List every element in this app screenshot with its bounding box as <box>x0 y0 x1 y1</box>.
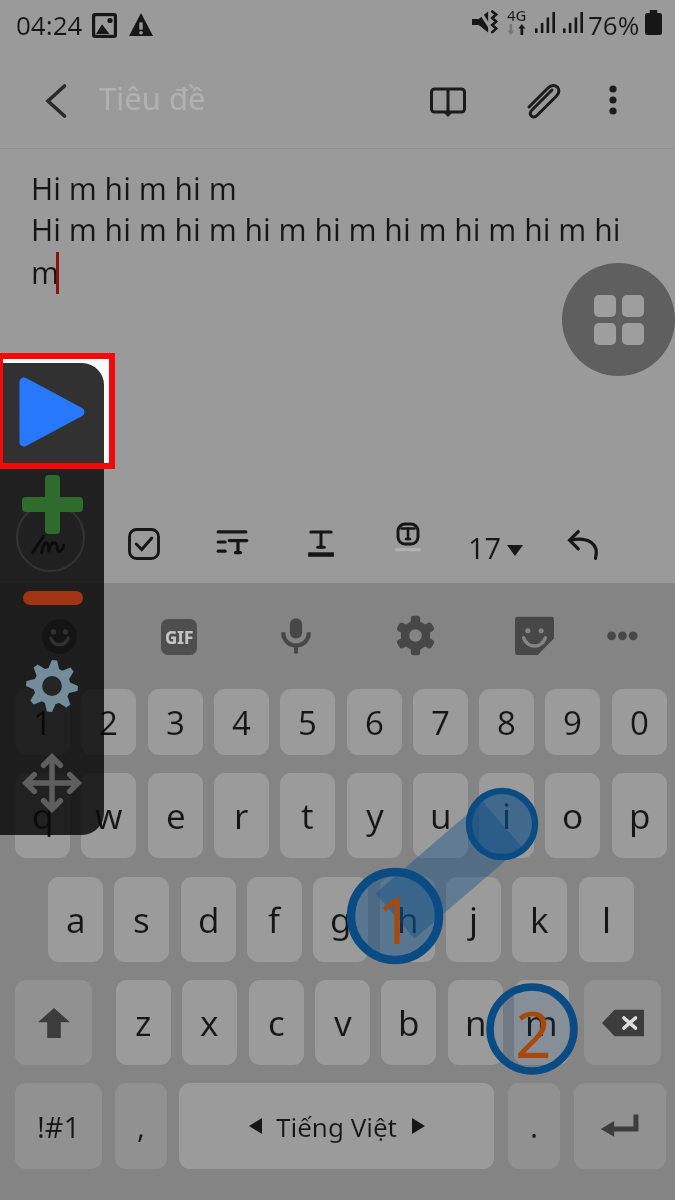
button[interactable]: Emoji <box>42 619 77 654</box>
button[interactable]: Attach <box>517 75 567 125</box>
staticText: Hi m hi m hi m hi m hi m hi m hi m hi m … <box>31 209 621 293</box>
staticText: t <box>301 792 314 840</box>
button[interactable]: 4 <box>214 689 269 755</box>
staticText: q <box>32 792 54 840</box>
button[interactable]: a <box>48 877 103 962</box>
button[interactable]: f <box>247 877 302 962</box>
staticText: v <box>334 999 352 1047</box>
staticText: z <box>135 999 152 1047</box>
staticText: 8 <box>497 700 516 745</box>
staticText: 9 <box>563 700 582 745</box>
button[interactable]: x <box>182 980 237 1065</box>
staticText: 1 <box>377 876 414 958</box>
button[interactable]: 9 <box>545 689 600 755</box>
button[interactable]: u <box>413 773 468 858</box>
staticText: f <box>268 896 281 944</box>
button[interactable]: v <box>315 980 370 1065</box>
button[interactable]: 2 <box>81 689 136 755</box>
button[interactable]: Text box <box>383 515 433 565</box>
button[interactable]: 0 <box>612 689 667 755</box>
button[interactable]: t <box>280 773 335 858</box>
button[interactable]: Paragraph style <box>209 519 255 565</box>
button[interactable]: . <box>508 1083 560 1169</box>
button[interactable]: Stop <box>23 591 83 605</box>
staticText: i <box>502 792 512 840</box>
button[interactable]: Play <box>0 363 104 465</box>
button[interactable]: 6 <box>347 689 402 755</box>
button[interactable]: More options <box>588 75 638 125</box>
staticText: w <box>95 792 123 840</box>
staticText: GIF <box>165 626 194 649</box>
staticText: x <box>200 999 219 1047</box>
button[interactable]: w <box>81 773 136 858</box>
button[interactable]: 3 <box>148 689 203 755</box>
button[interactable]: m <box>514 980 569 1065</box>
staticText: r <box>234 792 249 840</box>
button[interactable]: r <box>214 773 269 858</box>
button[interactable]: Move <box>23 754 81 812</box>
staticText: n <box>465 999 487 1047</box>
button[interactable]: s <box>114 877 169 962</box>
staticText: 76% <box>588 7 640 42</box>
button[interactable]: p <box>612 773 667 858</box>
button[interactable]: 7 <box>413 689 468 755</box>
button[interactable]: Voice input <box>274 613 318 657</box>
button[interactable]: 8 <box>479 689 534 755</box>
staticText: 2 <box>99 700 118 745</box>
staticText: a <box>66 896 86 944</box>
button[interactable]: Stickers <box>515 616 554 655</box>
button[interactable]: c <box>249 980 304 1065</box>
button[interactable]: Enter <box>574 1083 666 1169</box>
button[interactable]: z <box>116 980 171 1065</box>
button[interactable]: !#1 <box>15 1083 102 1169</box>
button[interactable]: o <box>545 773 600 858</box>
staticText: o <box>562 792 584 840</box>
button[interactable]: , <box>115 1083 167 1169</box>
staticText: Hi m hi m hi m <box>31 168 237 209</box>
button[interactable]: Add <box>22 475 83 534</box>
button[interactable]: i <box>479 773 534 858</box>
button[interactable]: GIF <box>161 619 197 655</box>
button[interactable]: Checklist <box>121 521 167 567</box>
button[interactable]: d <box>181 877 236 962</box>
button[interactable]: y <box>347 773 402 858</box>
button[interactable]: Shift <box>15 980 92 1065</box>
staticText: p <box>629 792 651 840</box>
button[interactable]: Text style <box>298 521 344 567</box>
staticText: !#1 <box>37 1107 81 1146</box>
staticText: 6 <box>365 700 384 745</box>
button[interactable]: 17 <box>468 528 523 567</box>
staticText: c <box>268 999 285 1047</box>
button[interactable]: h <box>380 877 435 962</box>
staticText: h <box>397 896 419 944</box>
button[interactable]: 1 <box>15 689 70 755</box>
staticText: 04:24 <box>16 7 83 42</box>
button[interactable]: k <box>512 877 567 962</box>
staticText: 1 <box>33 700 52 745</box>
button[interactable]: 5 <box>280 689 335 755</box>
button[interactable]: Backspace <box>584 980 661 1065</box>
button[interactable]: Tool settings <box>26 660 78 712</box>
button[interactable]: g <box>313 877 368 962</box>
button[interactable]: Back <box>32 76 82 126</box>
button[interactable]: Undo <box>560 520 608 568</box>
button[interactable]: l <box>579 877 634 962</box>
staticText: 0 <box>630 700 649 745</box>
button[interactable]: j <box>446 877 501 962</box>
staticText: m <box>525 999 558 1047</box>
staticText: 4 <box>232 700 251 745</box>
button[interactable]: More <box>602 617 642 657</box>
staticText: d <box>198 896 220 944</box>
button[interactable]: Keyboard settings <box>394 614 437 657</box>
button[interactable]: e <box>148 773 203 858</box>
staticText: g <box>330 896 352 944</box>
staticText: 7 <box>431 700 450 745</box>
button[interactable]: Apps <box>562 263 675 376</box>
button[interactable]: Tiếng Việt <box>179 1083 494 1169</box>
button[interactable]: Reading view <box>423 75 473 125</box>
button[interactable]: b <box>381 980 436 1065</box>
button[interactable]: q <box>15 773 70 858</box>
staticText: y <box>366 792 384 840</box>
staticText: . <box>530 1106 539 1147</box>
button[interactable]: n <box>448 980 503 1065</box>
